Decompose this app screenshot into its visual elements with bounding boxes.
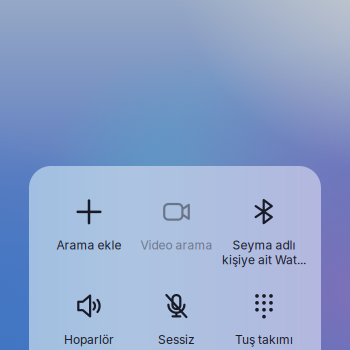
button[interactable]: Hoparlör — [45, 287, 133, 350]
staticText: Hoparlör — [64, 332, 114, 347]
staticText: Seyma adlı — [232, 238, 295, 252]
staticText: Sessiz — [158, 332, 195, 347]
button[interactable]: Arama ekle — [45, 193, 133, 267]
staticText: Arama ekle — [56, 238, 121, 252]
button[interactable]: Sessiz — [133, 287, 220, 350]
staticText: Tuş takımı — [235, 332, 293, 347]
button[interactable]: Seyma adlı kişiye ait Watch — [220, 193, 308, 267]
button[interactable]: Tuş takımı — [220, 287, 308, 350]
button[interactable]: Video arama — [133, 193, 220, 267]
staticText: Video arama — [140, 238, 212, 252]
staticText: kişiye ait Wat... — [222, 253, 306, 267]
